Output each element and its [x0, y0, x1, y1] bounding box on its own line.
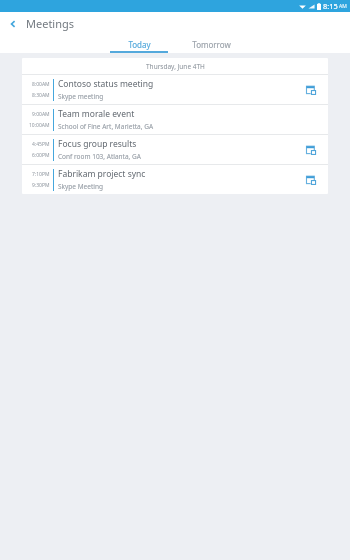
staticText: Team morale event [58, 108, 135, 120]
staticText: 4:45PM [32, 141, 50, 148]
staticText: Skype meeting [58, 92, 104, 101]
button[interactable]: Join meeting [302, 171, 320, 189]
staticText: 8:30AM [32, 92, 50, 99]
staticText: Tomorrow [192, 39, 231, 50]
staticText: Meetings [26, 16, 75, 31]
staticText: 10:00AM [29, 122, 50, 129]
staticText: 9:30PM [32, 182, 50, 189]
staticText: Skype Meeting [58, 182, 103, 191]
button[interactable]: Join meeting [302, 141, 320, 159]
staticText: Fabrikam project sync [58, 168, 146, 180]
button[interactable]: 4:45PM [22, 135, 328, 164]
button[interactable]: Join meeting [302, 81, 320, 99]
button[interactable]: Back [0, 12, 26, 35]
staticText: Focus group results [58, 138, 137, 150]
button[interactable]: Today [110, 35, 168, 53]
staticText: 8:15 [323, 1, 338, 11]
staticText: Thursday, June 4TH [146, 62, 205, 71]
button[interactable]: 8:00AM [22, 75, 328, 104]
button[interactable]: Tomorrow [182, 35, 240, 53]
staticText: Conf room 103, Atlanta, GA [58, 152, 141, 161]
staticText: Today [128, 39, 151, 50]
staticText: 8:00AM [32, 81, 50, 88]
staticText: AM [339, 3, 347, 10]
staticText: Contoso status meeting [58, 78, 154, 90]
button[interactable]: 7:10PM [22, 165, 328, 194]
button[interactable]: 9:00AM [22, 105, 328, 134]
staticText: 9:00AM [32, 111, 50, 118]
staticText: 6:00PM [32, 152, 50, 159]
staticText: 7:10PM [32, 171, 50, 178]
staticText: School of Fine Art, Marietta, GA [58, 122, 154, 131]
